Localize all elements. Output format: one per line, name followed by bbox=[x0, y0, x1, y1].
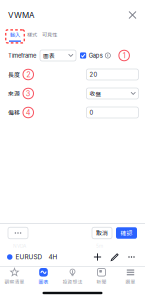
button[interactable]: 投資想法 bbox=[58, 266, 87, 286]
button[interactable]: 圖表 bbox=[40, 50, 76, 61]
staticText: 長度 bbox=[8, 70, 20, 79]
staticText: 1 bbox=[123, 51, 126, 60]
button[interactable]: 樣式 bbox=[22, 31, 37, 38]
button[interactable]: Close bbox=[126, 8, 139, 21]
staticText: NVDA bbox=[13, 243, 26, 249]
button[interactable]: 收盤 bbox=[86, 88, 138, 99]
staticText: 4 bbox=[26, 108, 31, 117]
button[interactable]: More options bbox=[125, 250, 138, 263]
staticText: 偏移 bbox=[8, 108, 20, 117]
button[interactable]: 可見性 bbox=[37, 31, 57, 38]
staticText: 4H bbox=[48, 253, 57, 261]
staticText: Gaps bbox=[89, 52, 103, 59]
button[interactable]: 輸入 bbox=[8, 31, 22, 42]
staticText: 選單 bbox=[125, 278, 135, 285]
staticText: 0 bbox=[89, 109, 93, 116]
staticText: 2 bbox=[26, 70, 30, 79]
staticText: 觀察清單 bbox=[4, 278, 24, 285]
button[interactable]: More bbox=[8, 227, 28, 239]
staticText: 5m bbox=[96, 243, 103, 249]
button[interactable]: 取消 bbox=[92, 227, 112, 239]
staticText: 可見性 bbox=[42, 31, 57, 38]
staticText: EURUSD bbox=[15, 253, 42, 261]
staticText: 投資想法 bbox=[62, 278, 82, 285]
staticText: 確認 bbox=[120, 229, 132, 237]
button[interactable]: 確認 bbox=[116, 227, 137, 239]
button[interactable]: 選單 bbox=[116, 266, 145, 286]
staticText: 圖表 bbox=[43, 51, 55, 59]
button[interactable]: 圖表 bbox=[29, 266, 58, 286]
staticText: 20 bbox=[89, 71, 97, 78]
staticText: 圖表 bbox=[38, 278, 48, 285]
staticText: Timeframe bbox=[8, 52, 36, 59]
staticText: 新聞 bbox=[96, 278, 106, 285]
button[interactable]: Draw bbox=[108, 250, 121, 263]
staticText: 樣式 bbox=[27, 31, 37, 38]
staticText: 輸入 bbox=[10, 31, 20, 38]
button[interactable]: Add bbox=[91, 250, 104, 263]
staticText: VWMA bbox=[8, 10, 35, 20]
button[interactable]: 觀察清單 bbox=[0, 266, 29, 286]
staticText: 收盤 bbox=[89, 89, 101, 97]
staticText: 3 bbox=[26, 89, 31, 98]
staticText: 來源 bbox=[8, 89, 20, 98]
button[interactable]: Gaps bbox=[80, 52, 110, 59]
button[interactable]: 新聞 bbox=[87, 266, 116, 286]
staticText: 取消 bbox=[96, 229, 108, 237]
